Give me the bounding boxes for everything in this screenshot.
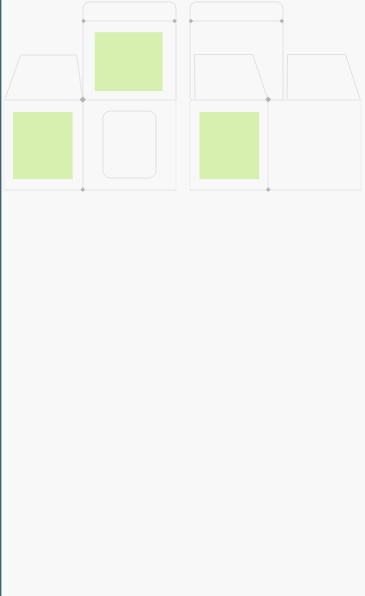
button[interactable]: Shape gallery [0, 0, 365, 596]
